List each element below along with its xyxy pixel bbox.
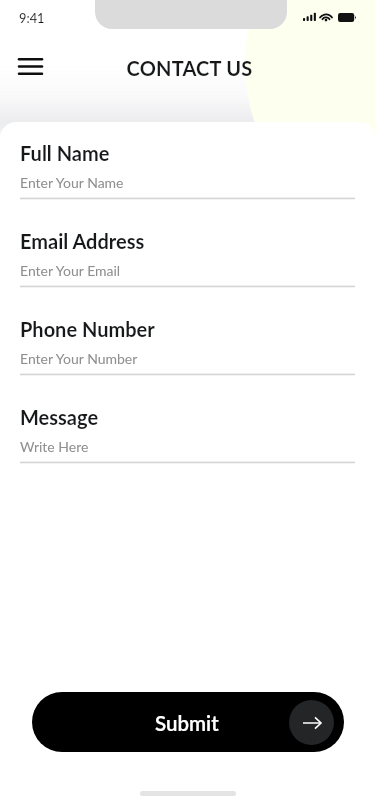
staticText: Submit: [155, 711, 219, 736]
staticText: Message: [20, 405, 99, 429]
staticText: Enter Your Number: [20, 350, 138, 367]
staticText: Write Here: [20, 438, 89, 455]
button[interactable]: Submit: [32, 692, 344, 752]
button[interactable]: Email Address: [0, 210, 375, 234]
staticText: Full Name: [20, 141, 110, 165]
staticText: 9:41: [19, 10, 45, 25]
staticText: Enter Your Name: [20, 174, 124, 191]
staticText: Enter Your Email: [20, 262, 121, 279]
button[interactable]: Full Name: [0, 122, 375, 146]
button[interactable]: Open navigation menu: [7, 44, 53, 88]
button[interactable]: Phone Number: [0, 298, 375, 322]
staticText: CONTACT US: [2, 56, 375, 80]
staticText: Email Address: [20, 229, 145, 253]
staticText: Phone Number: [20, 317, 155, 341]
